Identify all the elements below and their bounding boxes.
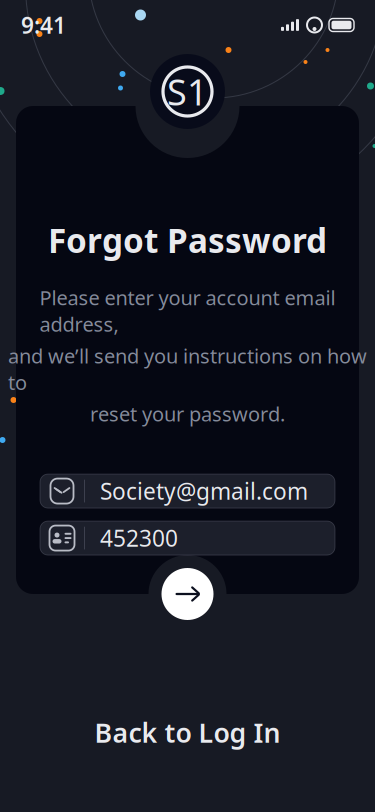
staticText: Forgot Password: [48, 218, 327, 262]
staticText: Back to Log In: [94, 715, 280, 750]
staticText: Please enter your account email address,: [39, 284, 335, 337]
button[interactable]: 452300: [40, 521, 335, 555]
button[interactable]: Back to Log In: [70, 705, 304, 760]
staticText: and we’ll send you instructions on how t…: [8, 342, 367, 395]
staticText: 9:41: [21, 10, 66, 40]
staticText: 452300: [100, 523, 178, 553]
staticText: reset your password.: [90, 400, 285, 427]
button[interactable]: Submit: [161, 568, 213, 620]
staticText: Society@gmail.com: [100, 476, 308, 506]
staticText: S1: [167, 68, 208, 115]
button[interactable]: Society@gmail.com: [40, 474, 335, 508]
